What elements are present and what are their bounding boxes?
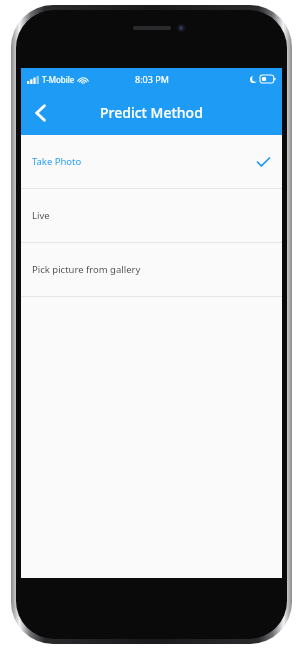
staticText: Pick picture from gallery (32, 263, 141, 276)
staticText: Live (32, 209, 50, 222)
button[interactable]: Live (21, 189, 282, 242)
staticText: 8:03 PM (135, 73, 169, 85)
button[interactable]: Pick picture from gallery (21, 243, 282, 296)
button[interactable]: Back (21, 90, 59, 135)
button[interactable]: Take Photo (21, 135, 282, 188)
staticText: Take Photo (32, 155, 82, 168)
staticText: Predict Method (100, 103, 203, 122)
staticText: T-Mobile (42, 74, 75, 85)
